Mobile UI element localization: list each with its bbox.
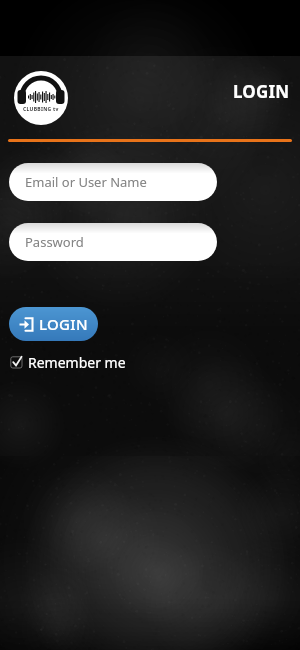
button[interactable]: LOGIN [9, 307, 98, 341]
button[interactable]: Email or User Name [9, 163, 217, 201]
staticText: Email or User Name [25, 173, 147, 191]
staticText: LOGIN [39, 314, 88, 334]
button[interactable]: Password [9, 223, 217, 261]
button[interactable]: CLUBBING tv [14, 71, 68, 125]
staticText: CLUBBING tv [23, 106, 59, 113]
staticText: Password [25, 233, 84, 251]
staticText: Remember me [28, 353, 126, 371]
button[interactable]: Remember me [10, 353, 126, 371]
staticText: LOGIN [233, 80, 290, 103]
